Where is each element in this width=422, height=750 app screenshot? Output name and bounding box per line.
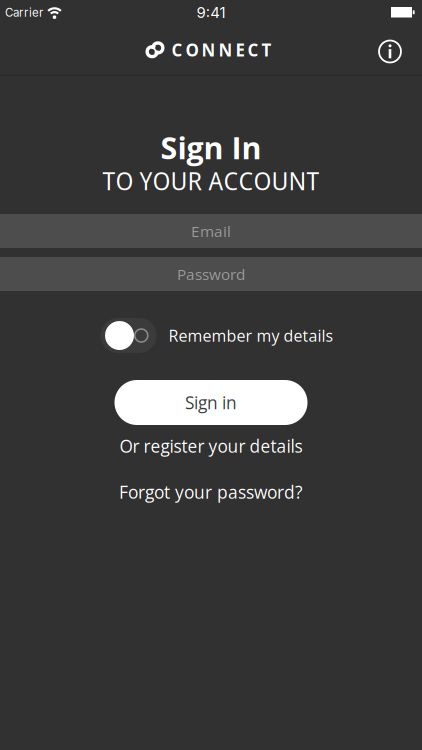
staticText: 9:41 [196,3,226,21]
staticText: Carrier [5,5,43,19]
staticText: Forgot your password? [119,480,303,504]
staticText: Sign in [185,391,237,414]
button[interactable]: Forgot your password? [119,480,303,504]
staticText: Sign In [160,127,261,168]
button[interactable]: Or register your details [119,434,302,458]
button[interactable]: Info [378,39,402,63]
button[interactable]: Remember my details [100,318,156,353]
staticText: Or register your details [119,434,302,458]
staticText: Password [177,264,245,284]
button[interactable]: Sign in [114,380,307,425]
staticText: Email [191,221,231,241]
staticText: Remember my details [168,325,333,346]
button[interactable]: Email [0,214,422,248]
staticText: TO YOUR ACCOUNT [102,162,319,198]
button[interactable]: Password [0,257,422,291]
staticText: CONNECT [171,38,271,61]
